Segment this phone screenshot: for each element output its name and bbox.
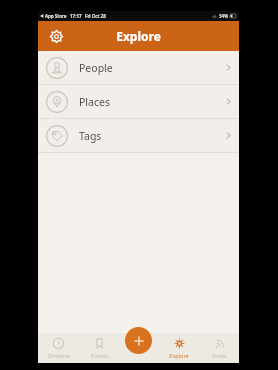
staticText: Feeds xyxy=(211,352,227,359)
staticText: People xyxy=(79,61,113,75)
staticText: Explore xyxy=(116,28,161,44)
staticText: 34% xyxy=(219,13,229,19)
button[interactable]: People xyxy=(38,51,239,84)
staticText: App Store xyxy=(45,13,67,19)
button[interactable]: Events xyxy=(79,333,119,363)
staticText: Events xyxy=(91,352,108,359)
staticText: Tags xyxy=(79,129,102,143)
staticText: Places xyxy=(79,95,110,109)
button[interactable]: Explore xyxy=(159,333,199,363)
button[interactable]: Add xyxy=(125,327,152,354)
button[interactable]: Places xyxy=(38,85,239,118)
button[interactable]: Settings xyxy=(44,24,68,48)
staticText: Timeline xyxy=(47,352,70,359)
button[interactable]: Timeline xyxy=(38,333,79,363)
button[interactable]: Feeds xyxy=(199,333,239,363)
staticText: Explore xyxy=(169,352,189,359)
staticText: 17:17 xyxy=(70,13,82,19)
button[interactable]: Tags xyxy=(38,119,239,152)
staticText: Fri Oct 28 xyxy=(85,13,106,19)
